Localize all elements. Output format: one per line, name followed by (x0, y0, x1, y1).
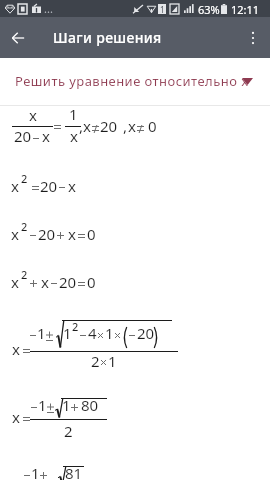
staticText: 1 (38, 395, 47, 415)
staticText: x (128, 116, 136, 136)
staticText: 81 (65, 463, 83, 480)
staticText: 12:11 (231, 2, 260, 17)
staticText: 4 (88, 323, 97, 343)
staticText: Решить уравнение относительно x (15, 72, 249, 90)
staticText: 1 (105, 323, 114, 343)
staticText: ... (44, 1, 53, 16)
staticText: 1 (31, 463, 40, 480)
staticText: x (29, 105, 37, 125)
staticText: Шаги решения (53, 28, 162, 47)
staticText: 20 (59, 272, 77, 292)
staticText: x (41, 272, 49, 292)
staticText: , (79, 116, 84, 136)
staticText: 20 (38, 224, 56, 244)
button[interactable]: Решить уравнение относительно x (0, 58, 270, 105)
staticText: x (68, 224, 76, 244)
button[interactable]: More options (236, 17, 270, 58)
staticText: x (42, 126, 50, 146)
staticText: x (12, 339, 20, 359)
staticText: 63% (198, 2, 220, 17)
staticText: 2 (21, 171, 28, 186)
staticText: 0 (87, 272, 96, 292)
staticText: 20 (100, 116, 118, 136)
staticText: 2 (91, 351, 100, 371)
staticText: 2 (72, 319, 79, 334)
staticText: x (11, 272, 19, 292)
staticText: x (11, 176, 19, 196)
staticText: 2 (21, 267, 28, 282)
staticText: x (12, 407, 20, 427)
staticText: x (83, 116, 91, 136)
staticText: x (70, 126, 78, 146)
staticText: 80 (81, 395, 99, 415)
staticText: , (123, 116, 128, 136)
staticText: 1 (69, 104, 78, 124)
staticText: x (11, 224, 19, 244)
staticText: 20 (137, 323, 155, 343)
staticText: x (68, 176, 76, 196)
staticText: 1 (37, 323, 46, 343)
staticText: 0 (87, 224, 96, 244)
staticText: 1 (108, 351, 117, 371)
staticText: 0 (148, 116, 157, 136)
button[interactable]: Back (0, 17, 36, 58)
staticText: 2 (64, 421, 73, 441)
staticText: 20 (40, 176, 58, 196)
staticText: 1 (63, 323, 72, 343)
staticText: 2 (21, 219, 28, 234)
staticText: 1 (160, 4, 165, 14)
staticText: 1 (62, 395, 71, 415)
staticText: 20 (14, 126, 32, 146)
